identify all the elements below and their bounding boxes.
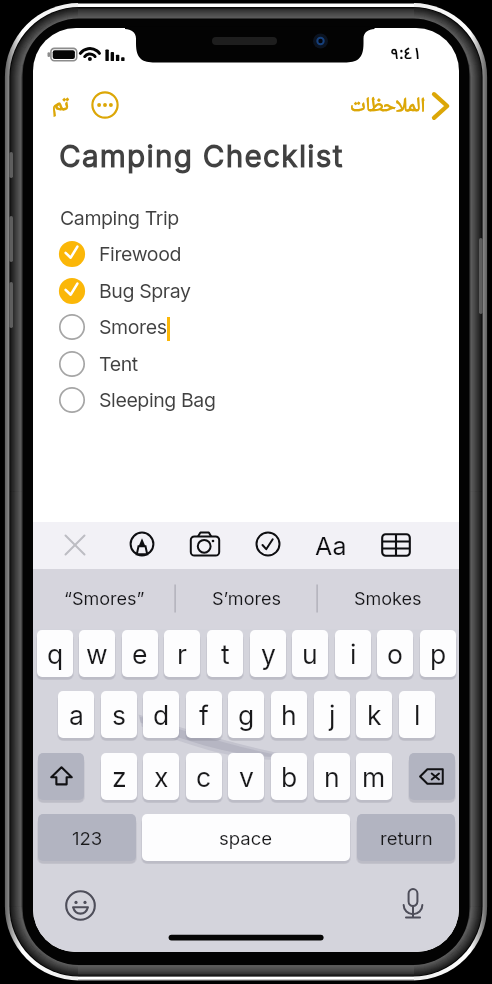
button[interactable]: j	[314, 691, 350, 738]
button[interactable]: w	[79, 630, 115, 677]
staticText: k	[367, 699, 382, 731]
button[interactable]: Backspace	[409, 753, 455, 800]
staticText: “Smores”	[64, 588, 145, 610]
staticText: z	[112, 761, 127, 793]
staticText: f	[199, 699, 209, 731]
button[interactable]: Close	[52, 522, 98, 569]
button[interactable]: Tent	[52, 346, 352, 382]
staticText: الملاحظات	[350, 93, 426, 120]
staticText: Aa	[315, 531, 347, 561]
button[interactable]: Camera	[182, 522, 228, 569]
staticText: e	[132, 638, 148, 670]
button[interactable]: y	[250, 630, 286, 677]
staticText: o	[387, 638, 403, 670]
button[interactable]: p	[420, 630, 456, 677]
staticText: Smokes	[354, 588, 422, 610]
button[interactable]: x	[143, 753, 179, 800]
staticText: v	[239, 761, 254, 793]
button[interactable]: m	[356, 753, 392, 800]
staticText: b	[281, 761, 298, 793]
button[interactable]: Bug Spray	[52, 273, 352, 309]
button[interactable]: o	[377, 630, 413, 677]
button[interactable]: Firewood	[52, 236, 352, 272]
button[interactable]: Table	[373, 522, 419, 569]
staticText: s	[112, 699, 126, 731]
staticText: Tent	[99, 352, 138, 376]
button[interactable]: Shift	[38, 753, 84, 800]
button[interactable]: 123	[38, 814, 136, 861]
staticText: m	[362, 761, 386, 793]
staticText: Smores	[99, 315, 167, 339]
staticText: Camping Checklist	[59, 138, 344, 174]
button[interactable]: k	[356, 691, 392, 738]
button[interactable]: Aa	[308, 522, 354, 569]
staticText: Sleeping Bag	[99, 388, 216, 412]
button[interactable]: return	[357, 814, 455, 861]
button[interactable]: Dictation	[396, 886, 430, 922]
button[interactable]: v	[228, 753, 264, 800]
button[interactable]: u	[292, 630, 328, 677]
button[interactable]: Checklist	[245, 522, 291, 569]
staticText: l	[414, 699, 421, 731]
button[interactable]: t	[207, 630, 243, 677]
staticText: i	[350, 638, 357, 670]
button[interactable]: r	[164, 630, 200, 677]
staticText: q	[47, 638, 64, 670]
staticText: u	[302, 638, 318, 670]
button[interactable]: q	[37, 630, 73, 677]
button[interactable]: Emoji keyboard	[63, 888, 97, 922]
staticText: r	[177, 638, 187, 670]
button[interactable]: c	[186, 753, 222, 800]
button[interactable]: n	[314, 753, 350, 800]
button[interactable]: Smokes	[317, 569, 459, 629]
button[interactable]: h	[271, 691, 307, 738]
button[interactable]: l	[399, 691, 435, 738]
button[interactable]: space	[142, 814, 350, 861]
staticText: return	[380, 827, 433, 849]
staticText: a	[69, 699, 84, 731]
button[interactable]: f	[186, 691, 222, 738]
button[interactable]: Sleeping Bag	[52, 382, 352, 418]
button[interactable]: More options	[88, 88, 122, 122]
staticText: c	[196, 761, 212, 793]
staticText: t	[221, 638, 230, 670]
staticText: y	[261, 638, 276, 670]
button[interactable]: i	[335, 630, 371, 677]
staticText: تم	[52, 91, 69, 120]
staticText: d	[153, 699, 170, 731]
staticText: n	[324, 761, 340, 793]
button[interactable]: Smores	[52, 309, 352, 345]
button[interactable]: S’mores	[175, 569, 317, 629]
staticText: x	[154, 761, 169, 793]
staticText: h	[281, 699, 297, 731]
staticText: w	[86, 638, 108, 670]
button[interactable]: الملاحظات	[350, 89, 451, 123]
staticText: Camping Trip	[60, 206, 179, 230]
button[interactable]: Markup	[119, 522, 165, 569]
button[interactable]: b	[271, 753, 307, 800]
staticText: p	[430, 638, 447, 670]
staticText: j	[329, 699, 336, 731]
staticText: g	[238, 699, 255, 731]
button[interactable]: g	[228, 691, 264, 738]
staticText: 123	[72, 827, 103, 849]
staticText: Firewood	[99, 242, 181, 266]
button[interactable]: “Smores”	[33, 569, 175, 629]
button[interactable]: a	[58, 691, 94, 738]
staticText: ٩:٤١	[390, 37, 422, 59]
staticText: Bug Spray	[99, 279, 191, 303]
staticText: space	[219, 827, 273, 849]
button[interactable]: z	[101, 753, 137, 800]
staticText: S’mores	[212, 588, 281, 610]
button[interactable]: e	[122, 630, 158, 677]
button[interactable]: s	[101, 691, 137, 738]
button[interactable]: d	[143, 691, 179, 738]
button[interactable]: تم	[44, 89, 76, 121]
